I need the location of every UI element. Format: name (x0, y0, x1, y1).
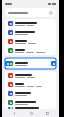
other: Selection handle end (51, 61, 56, 66)
button[interactable] (5, 46, 56, 55)
button[interactable]: Recents (43, 109, 51, 117)
button[interactable] (5, 28, 56, 37)
button[interactable] (5, 89, 56, 98)
button[interactable] (5, 37, 56, 46)
button[interactable] (5, 58, 56, 69)
button[interactable]: Back (10, 109, 18, 117)
other: Search (49, 11, 53, 15)
button[interactable] (5, 19, 56, 28)
button[interactable] (5, 71, 56, 80)
button[interactable] (5, 107, 56, 109)
button[interactable] (5, 98, 56, 107)
button[interactable] (5, 80, 56, 89)
other: Selection handle start (5, 61, 10, 66)
button[interactable]: Home (27, 109, 35, 117)
button[interactable]: Search (5, 8, 56, 17)
